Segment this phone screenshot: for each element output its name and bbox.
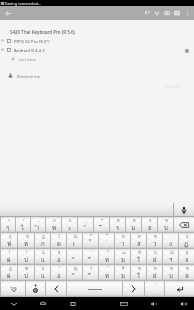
staticText: ษ xyxy=(122,233,125,239)
button[interactable]: ็ xyxy=(83,233,98,248)
button[interactable]: ฎ xyxy=(1,265,17,280)
button[interactable]: ุ xyxy=(78,217,93,232)
staticText: ซ xyxy=(186,265,189,271)
button[interactable]: ึ xyxy=(94,217,109,232)
button[interactable]: ภ xyxy=(46,217,61,232)
button[interactable]: ฃ xyxy=(163,265,178,280)
button[interactable]: ฯ xyxy=(83,265,98,280)
button[interactable]: ฬ xyxy=(131,249,146,264)
staticText: ท xyxy=(105,271,109,281)
button[interactable]: ธ xyxy=(35,265,50,280)
button[interactable]: ( xyxy=(1,249,17,264)
button[interactable]: ฮ xyxy=(51,249,66,264)
staticText: PIPO S2 Pro (8.0") xyxy=(14,38,50,44)
staticText: ำ xyxy=(36,223,40,233)
button[interactable]: ถ xyxy=(62,217,77,232)
staticText: า xyxy=(121,239,125,249)
button[interactable]: More options xyxy=(182,6,192,20)
button[interactable]: ฏ xyxy=(35,233,50,248)
button[interactable]: Switch language xyxy=(1,281,25,296)
button[interactable]: ๎ xyxy=(99,265,114,280)
staticText: ต xyxy=(133,217,136,223)
staticText: ล xyxy=(185,271,189,281)
button[interactable]: Navigate up xyxy=(1,6,15,20)
staticText: ฯ xyxy=(90,265,93,271)
button[interactable]: ฌ xyxy=(67,233,82,248)
button[interactable]: Space xyxy=(67,281,122,296)
button[interactable]: Add people xyxy=(142,6,152,20)
button[interactable]: ฅ xyxy=(147,265,162,280)
button[interactable]: ญ xyxy=(67,265,82,280)
button[interactable]: ? xyxy=(99,249,114,264)
staticText: . xyxy=(154,289,156,297)
button[interactable]: Settings xyxy=(26,281,45,296)
staticText: ม xyxy=(121,271,125,281)
button[interactable]: ฦ xyxy=(147,249,162,264)
button[interactable]: . xyxy=(163,233,178,248)
staticText: / xyxy=(23,217,25,222)
button[interactable]: ข xyxy=(158,217,173,232)
button[interactable]: Delete xyxy=(174,217,194,232)
staticText: ธ xyxy=(42,265,45,271)
button[interactable]: Info xyxy=(182,46,191,55)
button[interactable]: Home xyxy=(36,297,50,310)
button[interactable]: ซ xyxy=(147,233,162,248)
button[interactable]: Volume up xyxy=(177,297,191,310)
staticText: : xyxy=(155,281,157,286)
button[interactable]: _ xyxy=(31,217,45,232)
button[interactable]: ฑ xyxy=(18,265,34,280)
button[interactable]: โ xyxy=(51,233,66,248)
button[interactable]: / xyxy=(16,217,30,232)
button[interactable]: ฆ xyxy=(18,233,34,248)
button[interactable]: ฤ xyxy=(1,233,17,248)
button[interactable]: ๅ xyxy=(1,217,15,232)
button[interactable]: Remind me xyxy=(0,71,194,80)
staticText: ฏ xyxy=(42,233,45,239)
button[interactable]: ) xyxy=(18,249,34,264)
button[interactable]: Enter xyxy=(165,281,194,296)
button[interactable]: Next xyxy=(123,281,144,296)
button[interactable]: S420 Thai Keyboard Pro (R 5.6) xyxy=(0,27,194,36)
button[interactable]: ต xyxy=(126,217,141,232)
staticText: S420 Thai Keyboard Pro (R 5.6) xyxy=(10,29,75,35)
staticText: ใ xyxy=(137,255,140,265)
staticText: ค xyxy=(117,217,120,223)
button[interactable]: Volume down xyxy=(147,297,161,310)
button[interactable]: Attach xyxy=(152,6,162,20)
staticText: ผ xyxy=(7,255,11,265)
button[interactable]: ฒ xyxy=(115,249,130,264)
button[interactable]: จ xyxy=(142,217,157,232)
button[interactable]: Camera xyxy=(162,6,172,20)
button[interactable]: Recents xyxy=(66,297,80,310)
staticText: Saving screenshot… xyxy=(5,1,42,6)
button[interactable]: : xyxy=(145,281,164,296)
button[interactable]: ล xyxy=(179,233,194,248)
button[interactable]: Save xyxy=(172,6,182,20)
button[interactable]: ฿ xyxy=(115,265,130,280)
button[interactable]: ฉ xyxy=(35,249,50,264)
staticText: ฐ xyxy=(186,249,189,255)
button[interactable]: Hide keyboard xyxy=(7,297,21,310)
staticText: ว xyxy=(153,239,157,249)
button[interactable]: ณ xyxy=(163,249,178,264)
button[interactable]: ศ xyxy=(131,233,146,248)
staticText: ข xyxy=(165,217,168,223)
button[interactable]: ํ xyxy=(51,265,66,280)
button[interactable]: PIPO S2 Pro (8.0") xyxy=(0,36,194,45)
button[interactable]: ฐ xyxy=(179,249,194,264)
button[interactable]: Android R 4.4.3 xyxy=(0,45,194,54)
button[interactable]: ฺ xyxy=(67,249,82,264)
button[interactable]: ช xyxy=(131,265,146,280)
button[interactable]: ษ xyxy=(115,233,130,248)
button[interactable]: List item xyxy=(0,54,194,63)
button[interactable]: ค xyxy=(110,217,125,232)
staticText: อ xyxy=(57,255,61,265)
button[interactable]: ซ xyxy=(179,265,194,280)
button[interactable]: Change keyboard xyxy=(117,297,131,310)
button[interactable]: ๊ xyxy=(99,233,114,248)
button[interactable]: Voice input xyxy=(174,203,194,217)
button[interactable]: ์ xyxy=(83,249,98,264)
button[interactable]: Previous xyxy=(46,281,66,296)
staticText: ป xyxy=(24,255,28,265)
staticText: ฅ xyxy=(154,265,157,271)
